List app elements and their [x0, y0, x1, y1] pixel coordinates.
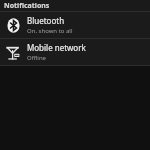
staticText: Bluetooth: [27, 15, 65, 26]
staticText: Mobile network: [27, 42, 86, 53]
staticText: Offline: [27, 54, 47, 62]
staticText: On, shown to all: [27, 27, 73, 35]
button[interactable]: Bluetooth: [0, 12, 150, 38]
button[interactable]: Mobile network: [0, 39, 150, 65]
other: Bluetooth: [5, 17, 21, 33]
staticText: Notifications: [4, 1, 50, 11]
other: Mobile network: [5, 44, 21, 60]
